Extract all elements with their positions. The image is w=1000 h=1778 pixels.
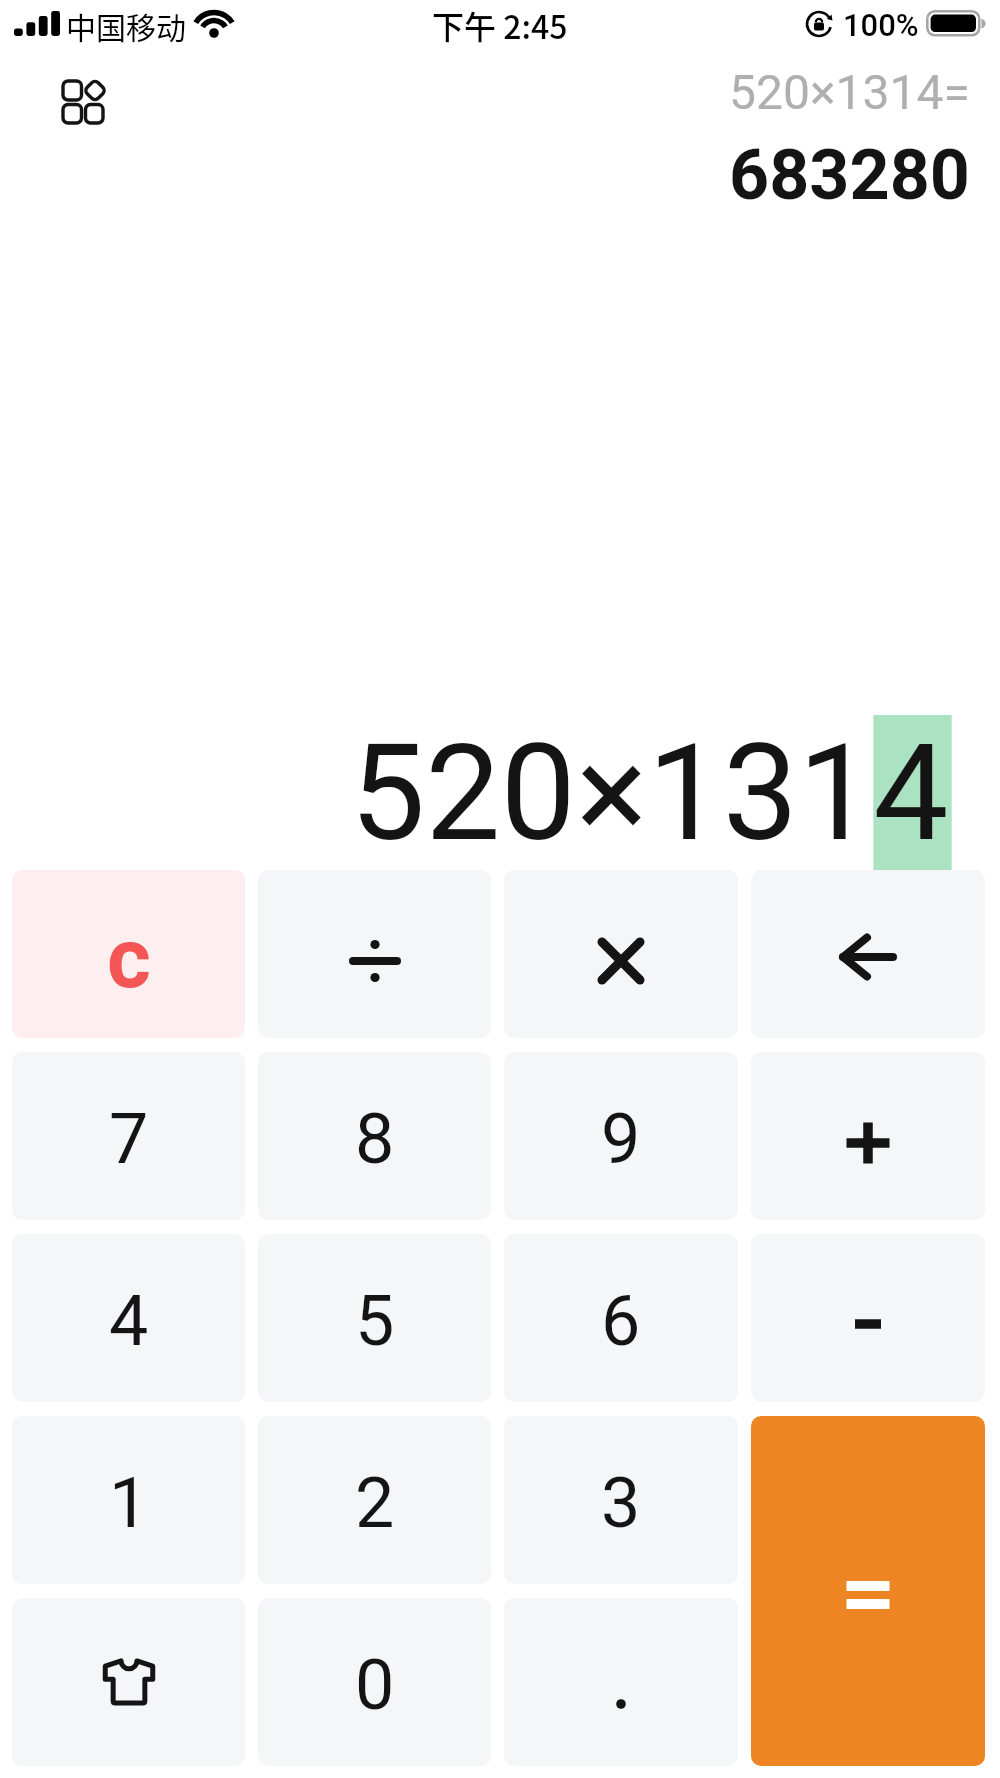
staticText: 0	[355, 1644, 395, 1726]
staticText: 1	[109, 1462, 149, 1544]
button[interactable]: 0	[258, 1598, 491, 1766]
button[interactable]	[61, 78, 109, 126]
staticText: 6	[601, 1280, 641, 1362]
button[interactable]: 7	[12, 1052, 245, 1220]
button[interactable]: 8	[258, 1052, 491, 1220]
staticText: 5	[355, 1280, 395, 1362]
button[interactable]: 2	[258, 1416, 491, 1584]
staticText: 4	[109, 1280, 149, 1362]
staticText: 8	[355, 1098, 395, 1180]
staticText: 9	[601, 1098, 641, 1180]
staticText: 100%	[843, 7, 919, 43]
button[interactable]	[504, 870, 738, 1038]
button[interactable]: 1	[12, 1416, 245, 1584]
button[interactable]	[751, 1234, 985, 1402]
button[interactable]	[751, 870, 985, 1038]
button[interactable]: 9	[504, 1052, 738, 1220]
button[interactable]: 5	[258, 1234, 491, 1402]
button[interactable]	[751, 1416, 985, 1766]
button[interactable]: c	[12, 870, 245, 1038]
staticText: 683280	[729, 134, 970, 216]
button[interactable]: 6	[504, 1234, 738, 1402]
staticText: 520×1314=	[729, 64, 970, 120]
staticText: 7	[109, 1098, 149, 1180]
staticText: c	[107, 909, 151, 1007]
staticText: 520×1314	[350, 715, 952, 872]
staticText: 3	[601, 1462, 641, 1544]
staticText: 中国移动	[66, 4, 186, 47]
button[interactable]	[504, 1598, 738, 1766]
button[interactable]	[12, 1598, 245, 1766]
staticText: 2	[355, 1462, 395, 1544]
button[interactable]	[751, 1052, 985, 1220]
button[interactable]: 4	[12, 1234, 245, 1402]
staticText: 下午 2:45	[432, 2, 568, 48]
button[interactable]	[258, 870, 491, 1038]
button[interactable]: 3	[504, 1416, 738, 1584]
